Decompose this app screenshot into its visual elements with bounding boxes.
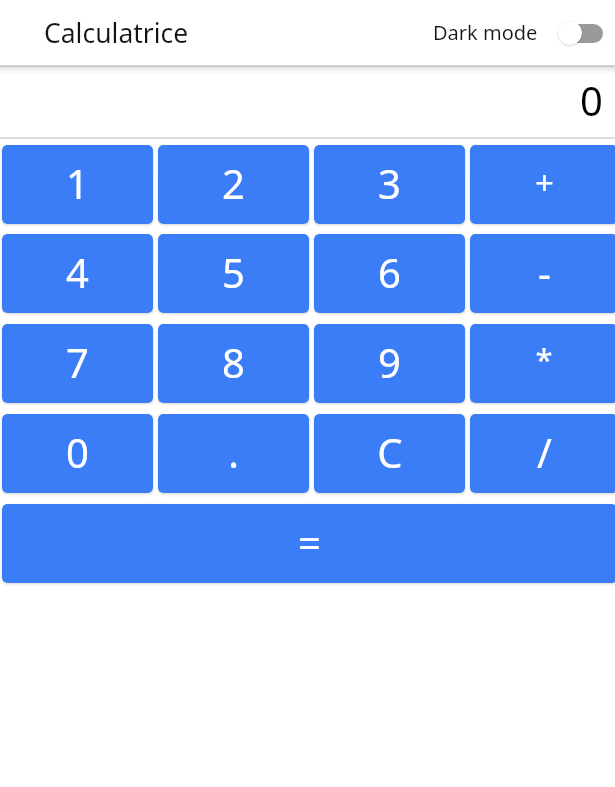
button[interactable]: 1 (2, 145, 153, 224)
button[interactable]: 6 (314, 234, 465, 313)
staticText: . (228, 425, 239, 479)
button[interactable]: 0 (2, 414, 153, 493)
button[interactable]: 7 (2, 324, 153, 403)
button[interactable]: = (2, 504, 615, 583)
staticText: * (535, 338, 553, 380)
button[interactable]: 9 (314, 324, 465, 403)
staticText: 9 (378, 335, 401, 389)
button[interactable]: 4 (2, 234, 153, 313)
button[interactable]: 2 (158, 145, 309, 224)
staticText: 8 (222, 335, 245, 389)
button[interactable]: 5 (158, 234, 309, 313)
staticText: 7 (66, 335, 89, 389)
staticText: 0 (580, 73, 603, 127)
staticText: 3 (378, 156, 401, 210)
staticText: Dark mode (433, 19, 538, 46)
staticText: 5 (222, 245, 245, 299)
button[interactable]: 3 (314, 145, 465, 224)
staticText: 2 (222, 156, 245, 210)
button[interactable]: C (314, 414, 465, 493)
staticText: Calculatrice (44, 15, 189, 51)
button[interactable]: 8 (158, 324, 309, 403)
staticText: 1 (66, 156, 89, 210)
button[interactable]: . (158, 414, 309, 493)
button[interactable]: * (470, 324, 615, 403)
staticText: C (377, 425, 403, 479)
staticText: / (537, 425, 552, 479)
button[interactable]: + (470, 145, 615, 224)
staticText: + (535, 160, 554, 205)
staticText: - (538, 245, 551, 299)
staticText: 6 (378, 245, 401, 299)
button[interactable] (558, 20, 603, 46)
staticText: = (298, 515, 321, 569)
button[interactable]: / (470, 414, 615, 493)
staticText: 0 (66, 425, 89, 479)
staticText: 4 (66, 245, 89, 299)
button[interactable]: - (470, 234, 615, 313)
